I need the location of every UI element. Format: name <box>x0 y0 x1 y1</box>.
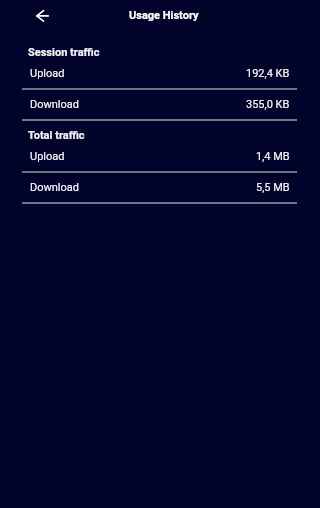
staticText: 5,5 MB <box>256 181 290 194</box>
staticText: Usage History <box>129 9 199 22</box>
button[interactable]: Download <box>0 173 320 204</box>
staticText: 192,4 KB <box>246 67 290 80</box>
button[interactable]: Download <box>0 90 320 121</box>
staticText: Total traffic <box>28 129 85 142</box>
staticText: 1,4 MB <box>256 150 290 163</box>
staticText: Download <box>30 98 79 111</box>
staticText: Download <box>30 181 79 194</box>
staticText: Session traffic <box>28 46 100 59</box>
button[interactable]: Upload <box>0 59 320 90</box>
button[interactable]: Upload <box>0 142 320 173</box>
staticText: 355,0 KB <box>246 98 290 111</box>
staticText: Upload <box>30 150 65 163</box>
button[interactable]: Navigate up <box>27 1 57 31</box>
staticText: Upload <box>30 67 65 80</box>
